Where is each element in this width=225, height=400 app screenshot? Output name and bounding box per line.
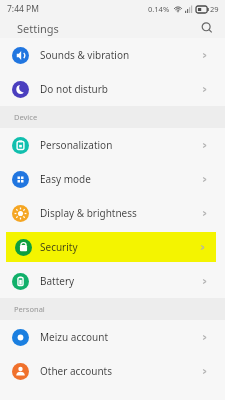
staticText: Meizu account <box>40 330 108 344</box>
button[interactable]: Do not disturb <box>0 72 225 106</box>
button[interactable]: Search <box>198 19 216 37</box>
staticText: Personal <box>14 304 45 314</box>
staticText: 29 <box>210 4 219 14</box>
staticText: Battery <box>40 274 75 288</box>
button[interactable]: Display & brightness <box>0 196 225 230</box>
button[interactable]: Easy mode <box>0 162 225 196</box>
staticText: Sounds & vibration <box>40 48 130 62</box>
staticText: Display & brightness <box>40 206 137 220</box>
staticText: Do not disturb <box>40 82 108 96</box>
staticText: Personalization <box>40 138 113 152</box>
staticText: Settings <box>17 21 59 36</box>
button[interactable]: Battery <box>0 264 225 298</box>
staticText: Device <box>14 112 38 122</box>
button[interactable]: Personalization <box>0 128 225 162</box>
staticText: Security <box>40 240 78 254</box>
button[interactable]: Security <box>6 232 216 262</box>
button[interactable]: Sounds & vibration <box>0 38 225 72</box>
staticText: 7:44 PM <box>7 3 39 15</box>
staticText: Other accounts <box>40 364 112 378</box>
button[interactable]: Meizu account <box>0 320 225 354</box>
staticText: Easy mode <box>40 172 91 186</box>
button[interactable]: Other accounts <box>0 354 225 388</box>
staticText: 0.14% <box>148 4 170 14</box>
